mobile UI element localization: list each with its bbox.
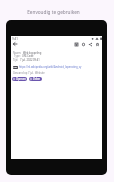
staticText: https://nl.wikipedia.org/wiki/Android_(o… bbox=[19, 65, 82, 69]
staticText: Type: bbox=[14, 54, 21, 58]
button[interactable]: Delen bbox=[29, 77, 42, 81]
button[interactable]: Copy bbox=[80, 41, 86, 47]
staticText: URI-Code bbox=[22, 54, 34, 58]
staticText: Website bbox=[35, 71, 45, 75]
staticText: Gescand op 7 jul. bbox=[13, 71, 34, 75]
button[interactable]: Openen bbox=[12, 77, 27, 81]
staticText: 9:41 bbox=[12, 37, 18, 41]
button[interactable]: Calendar bbox=[73, 41, 79, 47]
staticText: Delen bbox=[33, 77, 41, 81]
button[interactable]: Share bbox=[87, 41, 93, 47]
staticText: Web koppeling bbox=[23, 51, 42, 55]
staticText: 7 jul. 2022 09:41 bbox=[20, 58, 40, 62]
button[interactable]: Favourite bbox=[94, 41, 100, 47]
staticText: Openen bbox=[16, 77, 26, 81]
staticText: Tijd: bbox=[13, 58, 19, 62]
staticText: Naam: bbox=[13, 51, 22, 55]
staticText: Eenvoudig te gebruiken bbox=[27, 9, 80, 15]
button[interactable]: Back bbox=[12, 41, 18, 47]
staticText: URL bbox=[13, 66, 18, 69]
